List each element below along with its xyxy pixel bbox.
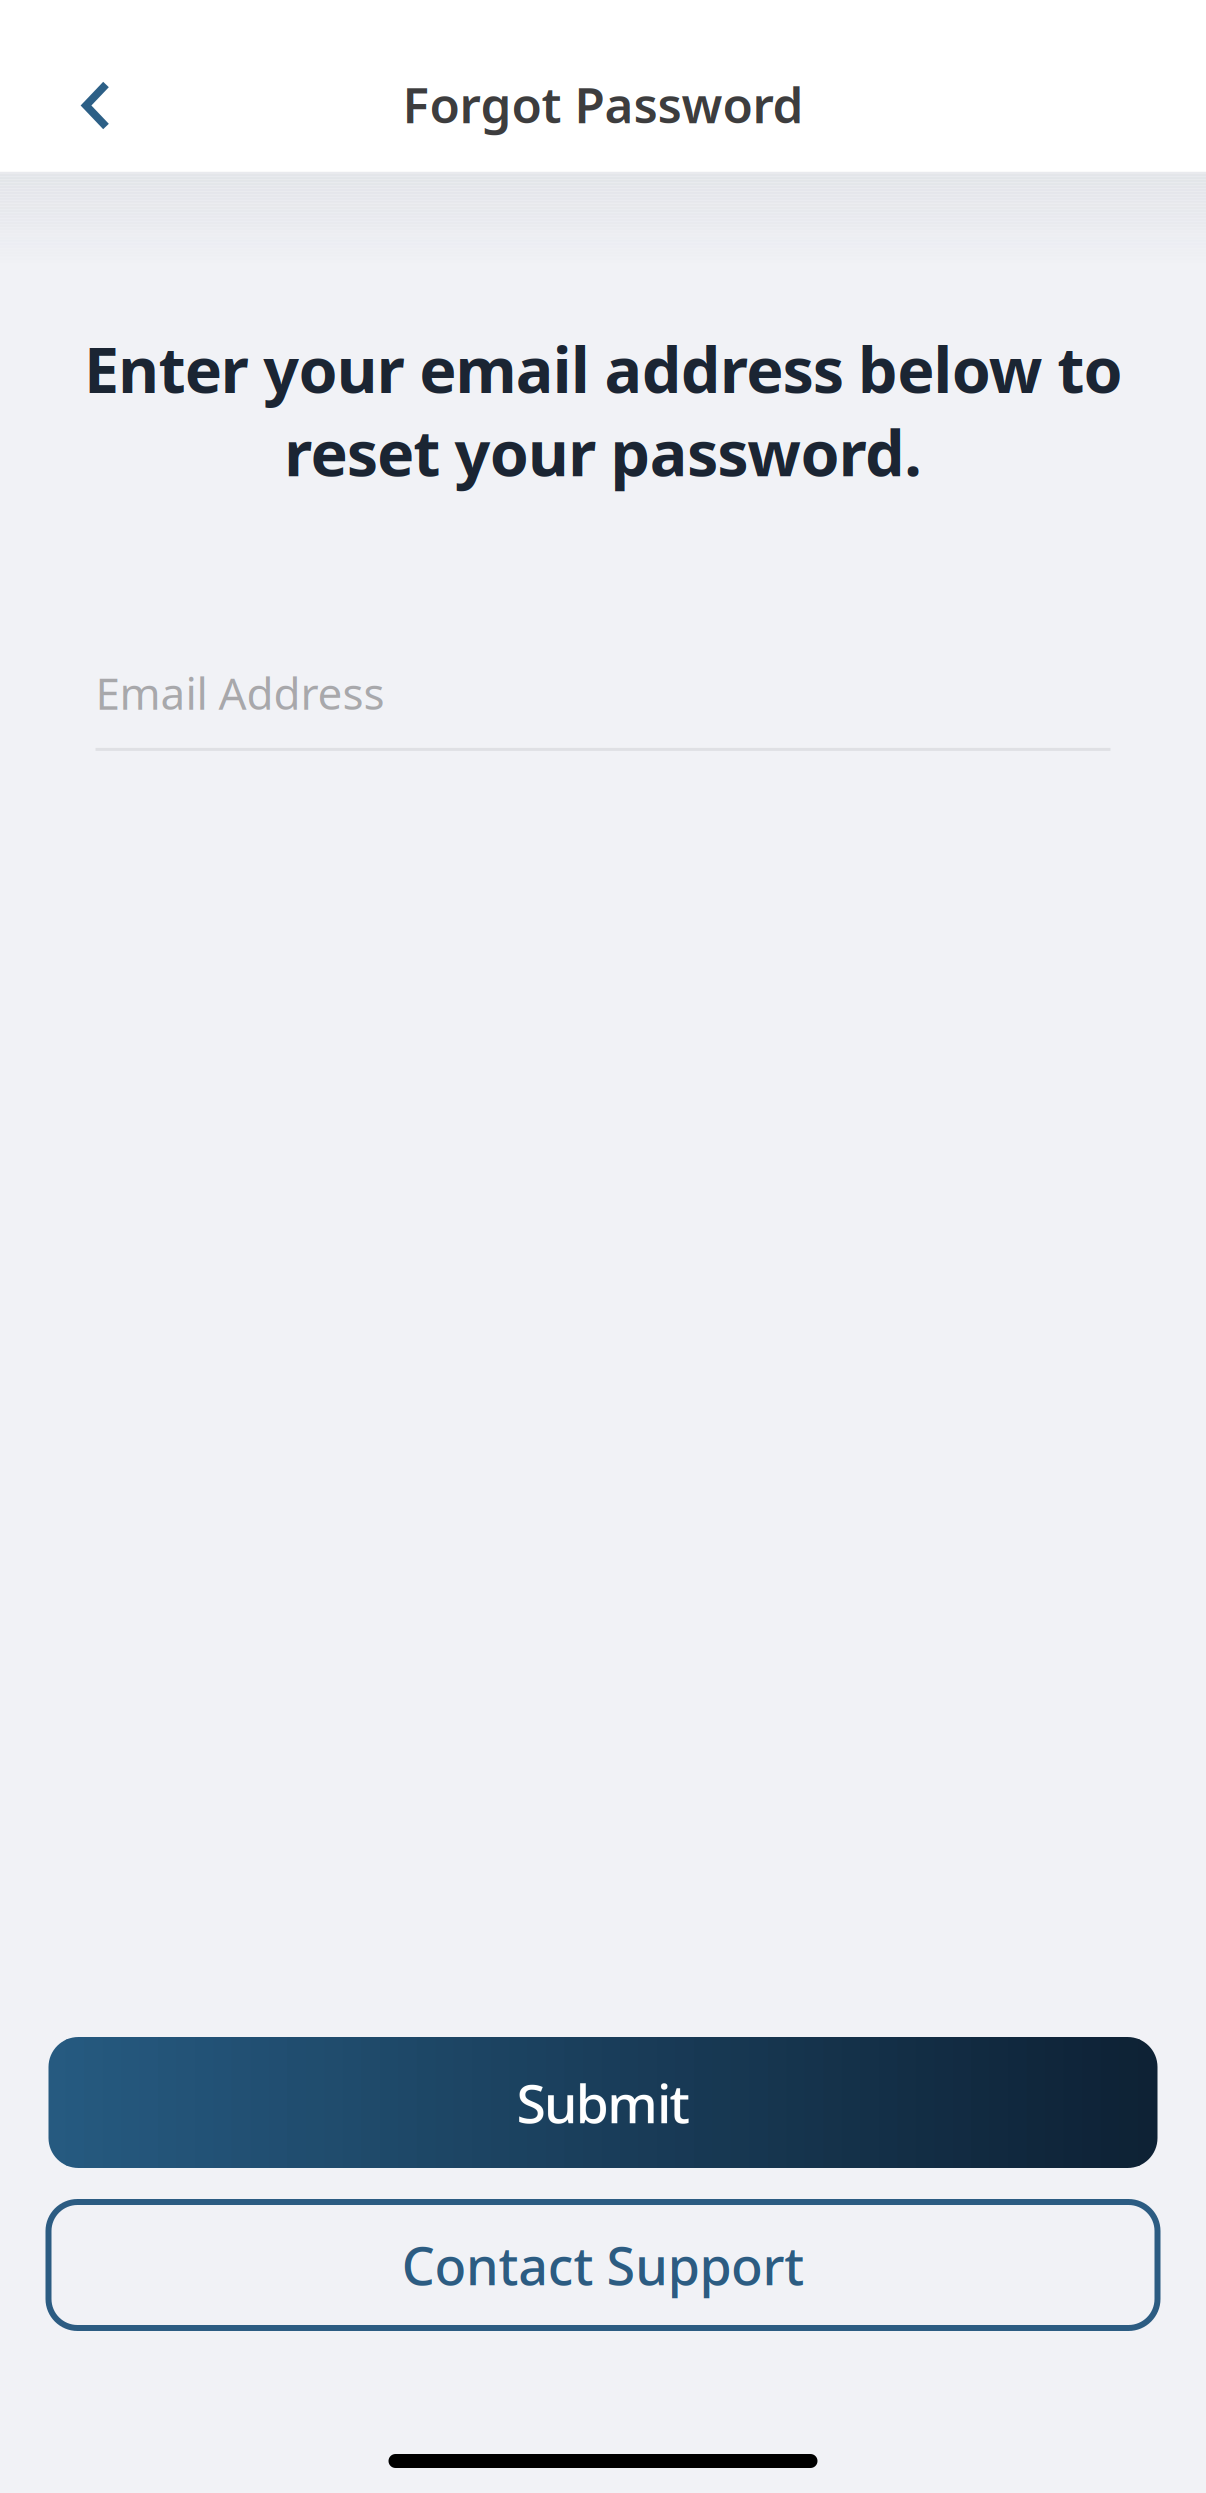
staticText: Submit [516, 2067, 689, 2138]
button[interactable]: Submit [48, 2037, 1157, 2168]
button[interactable]: Contact Support [48, 2202, 1157, 2328]
staticText: Forgot Password [402, 71, 803, 137]
staticText: Contact Support [402, 2230, 804, 2300]
button[interactable]: Back [0, 44, 134, 166]
staticText: Enter your email address below to reset … [84, 327, 1122, 493]
staticText: Email Address [95, 663, 384, 722]
